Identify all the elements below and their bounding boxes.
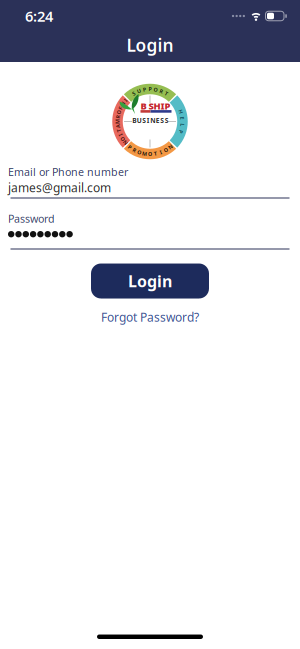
staticText: N — [121, 100, 125, 107]
staticText: Login — [126, 33, 173, 56]
staticText: O — [164, 146, 168, 153]
staticText: E — [181, 115, 184, 122]
staticText: BUSINESS — [132, 116, 169, 125]
staticText: P — [143, 86, 146, 93]
staticText: Email or Phone number — [8, 165, 128, 179]
staticText: R — [116, 113, 119, 120]
staticText: O — [121, 136, 125, 143]
secureTextField[interactable]: ••••••••• — [0, 231, 300, 237]
staticText: P — [148, 85, 151, 93]
staticText: U — [137, 87, 141, 94]
staticText: F — [119, 104, 122, 111]
staticText: R — [160, 87, 163, 94]
staticText: Login — [128, 270, 172, 292]
staticText: B SHIP — [140, 100, 170, 112]
textField[interactable]: james@gmail.com — [8, 179, 300, 195]
staticText: P — [128, 143, 131, 150]
staticText: S — [132, 90, 135, 97]
staticText: L — [181, 121, 184, 128]
staticText: N — [168, 143, 172, 150]
staticText: T — [154, 150, 157, 157]
staticText: O — [148, 150, 152, 158]
staticText: M — [142, 150, 147, 157]
staticText: I — [124, 97, 126, 104]
staticText: R — [133, 146, 136, 153]
button[interactable]: Login — [91, 263, 209, 298]
staticText: N — [123, 139, 127, 146]
staticText: 6:24 — [25, 6, 53, 26]
staticText: I — [160, 149, 162, 156]
staticText: T — [117, 127, 120, 134]
staticText: james@gmail.com — [8, 179, 111, 195]
staticText: H — [179, 108, 183, 115]
staticText: P — [179, 128, 182, 135]
staticText: M — [115, 118, 120, 125]
staticText: Password — [8, 211, 55, 226]
button[interactable]: Forgot Password? — [101, 311, 199, 323]
staticText: O — [137, 149, 141, 156]
staticText: T — [165, 90, 168, 97]
staticText: O — [117, 109, 121, 116]
staticText: O — [154, 86, 158, 93]
staticText: A — [116, 123, 120, 130]
staticText: I — [119, 131, 121, 139]
staticText: Forgot Password? — [101, 309, 199, 325]
